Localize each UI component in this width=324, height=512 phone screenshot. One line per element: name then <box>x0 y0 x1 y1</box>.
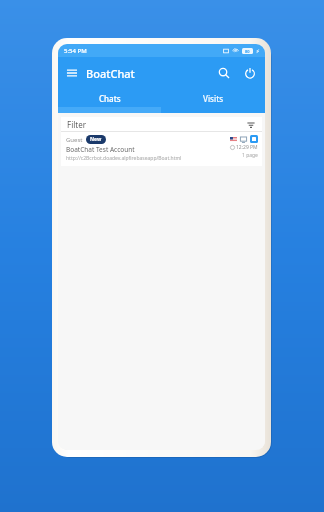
button[interactable]: Search <box>211 57 237 89</box>
staticText: ⚡ <box>256 48 260 54</box>
button[interactable]: Open navigation menu <box>58 57 86 89</box>
staticText: Visits <box>203 93 224 104</box>
other: Filter options <box>246 120 256 130</box>
button[interactable]: Guest <box>61 132 262 166</box>
staticText: 1 page <box>242 152 258 159</box>
staticText: http://c2Bcrbot.doadev.alpfirebaseapp/Bo… <box>66 155 182 162</box>
staticText: BoatChat Test Account <box>66 145 135 154</box>
staticText: 12:29 PM <box>236 144 258 151</box>
staticText: 5:54 PM <box>64 47 87 55</box>
staticText: BoatChat <box>86 66 135 81</box>
staticText: Chats <box>99 93 121 104</box>
staticText: 80 <box>245 49 250 54</box>
button[interactable]: Visits <box>161 89 265 107</box>
button[interactable]: Chats <box>58 89 161 107</box>
staticText: New <box>90 136 102 143</box>
button[interactable]: Filter <box>61 117 262 132</box>
button[interactable]: Log out <box>237 57 263 89</box>
staticText: Filter <box>67 119 86 130</box>
staticText: Guest <box>66 136 83 144</box>
